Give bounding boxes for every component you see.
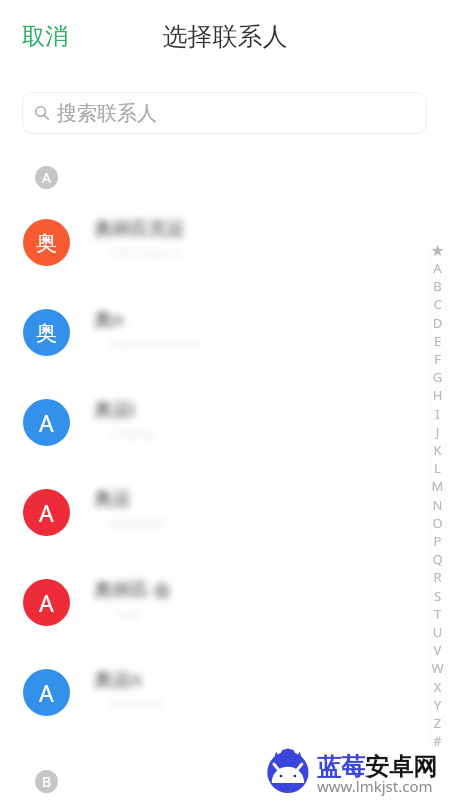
staticText: A	[428, 259, 447, 277]
staticText: V	[428, 641, 447, 659]
staticText: L	[428, 459, 447, 477]
staticText: 蓝莓	[317, 752, 365, 782]
button[interactable]: A	[0, 647, 450, 737]
staticText: P	[428, 532, 447, 550]
staticText: 搜索联系人	[57, 101, 157, 126]
staticText: #	[428, 732, 447, 750]
staticText: 取消	[22, 22, 68, 51]
staticText: 奥	[36, 320, 57, 346]
staticText: F	[428, 350, 447, 368]
staticText: B	[42, 772, 52, 791]
staticText: M	[428, 477, 447, 495]
staticText: J	[428, 423, 447, 441]
staticText: X	[428, 678, 447, 696]
button[interactable]: 搜索联系人	[22, 92, 427, 134]
staticText: Q	[428, 550, 447, 568]
staticText: C	[428, 295, 447, 313]
staticText: Y	[428, 696, 447, 714]
staticText: S	[428, 587, 447, 605]
staticText: 奥运i	[94, 397, 136, 422]
staticText: 奥n	[94, 307, 124, 332]
staticText: O	[428, 514, 447, 532]
button[interactable]: Alphabet index	[428, 238, 447, 750]
staticText: A	[39, 677, 54, 708]
staticText: W	[428, 659, 447, 677]
button[interactable]: A	[0, 467, 450, 557]
staticText: U	[428, 623, 447, 641]
staticText: G	[428, 368, 447, 386]
staticText: H	[428, 386, 447, 404]
staticText: 选择联系人	[0, 21, 450, 52]
staticText: B	[428, 277, 447, 295]
staticText: N	[428, 496, 447, 514]
button[interactable]: 奥	[0, 287, 450, 377]
button[interactable]: 奥	[0, 197, 450, 287]
staticText: 奥林匹克运	[94, 218, 184, 241]
staticText: 奥运n	[94, 667, 142, 692]
button[interactable]: A	[0, 557, 450, 647]
staticText: D	[428, 314, 447, 332]
staticText: A	[39, 407, 54, 438]
staticText: 奥	[36, 230, 57, 256]
staticText: I	[428, 405, 447, 423]
staticText: A	[42, 168, 51, 187]
staticText: A	[39, 587, 54, 618]
staticText: R	[428, 568, 447, 586]
staticText: www.lmkjst.com	[317, 776, 433, 796]
staticText: Z	[428, 714, 447, 732]
staticText: K	[428, 441, 447, 459]
staticText: 安卓网	[365, 752, 437, 782]
staticText: 奥运	[94, 488, 130, 511]
button[interactable]: 取消	[12, 16, 78, 57]
staticText: T	[428, 605, 447, 623]
staticText: 奥林匹 会	[94, 577, 171, 602]
staticText: E	[428, 332, 447, 350]
staticText: A	[39, 497, 54, 528]
button[interactable]: A	[0, 377, 450, 467]
